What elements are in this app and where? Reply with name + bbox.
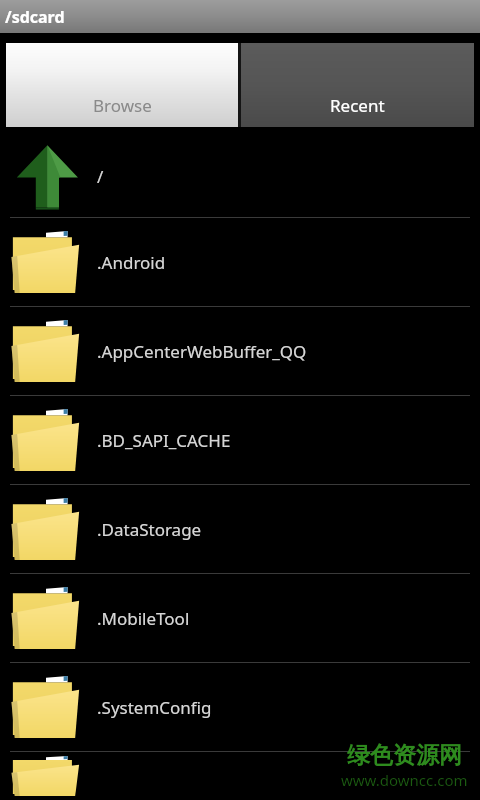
staticText: / bbox=[97, 165, 104, 188]
staticText: .Android bbox=[97, 251, 166, 274]
button[interactable]: / bbox=[0, 135, 480, 217]
button[interactable]: .DataStorage bbox=[0, 485, 480, 573]
staticText: .AppCenterWebBuffer_QQ bbox=[97, 340, 307, 363]
staticText: .SystemConfig bbox=[97, 696, 212, 719]
staticText: www.downcc.com bbox=[341, 770, 468, 790]
button[interactable]: .Android bbox=[0, 218, 480, 306]
staticText: .MobileTool bbox=[97, 607, 190, 630]
button[interactable]: Browse bbox=[6, 43, 238, 127]
button[interactable]: .MobileTool bbox=[0, 574, 480, 662]
staticText: Recent bbox=[330, 94, 385, 117]
button[interactable]: .AppCenterWebBuffer_QQ bbox=[0, 307, 480, 395]
staticText: Browse bbox=[93, 94, 152, 117]
staticText: /sdcard bbox=[5, 6, 65, 28]
button[interactable]: .SystemConfig bbox=[0, 663, 480, 751]
staticText: .DataStorage bbox=[97, 518, 202, 541]
button[interactable]: Recent bbox=[241, 43, 474, 127]
staticText: .BD_SAPI_CACHE bbox=[97, 429, 231, 452]
staticText: 绿色资源网 bbox=[347, 741, 462, 770]
button[interactable]: .BD_SAPI_CACHE bbox=[0, 396, 480, 484]
button[interactable] bbox=[0, 752, 480, 792]
